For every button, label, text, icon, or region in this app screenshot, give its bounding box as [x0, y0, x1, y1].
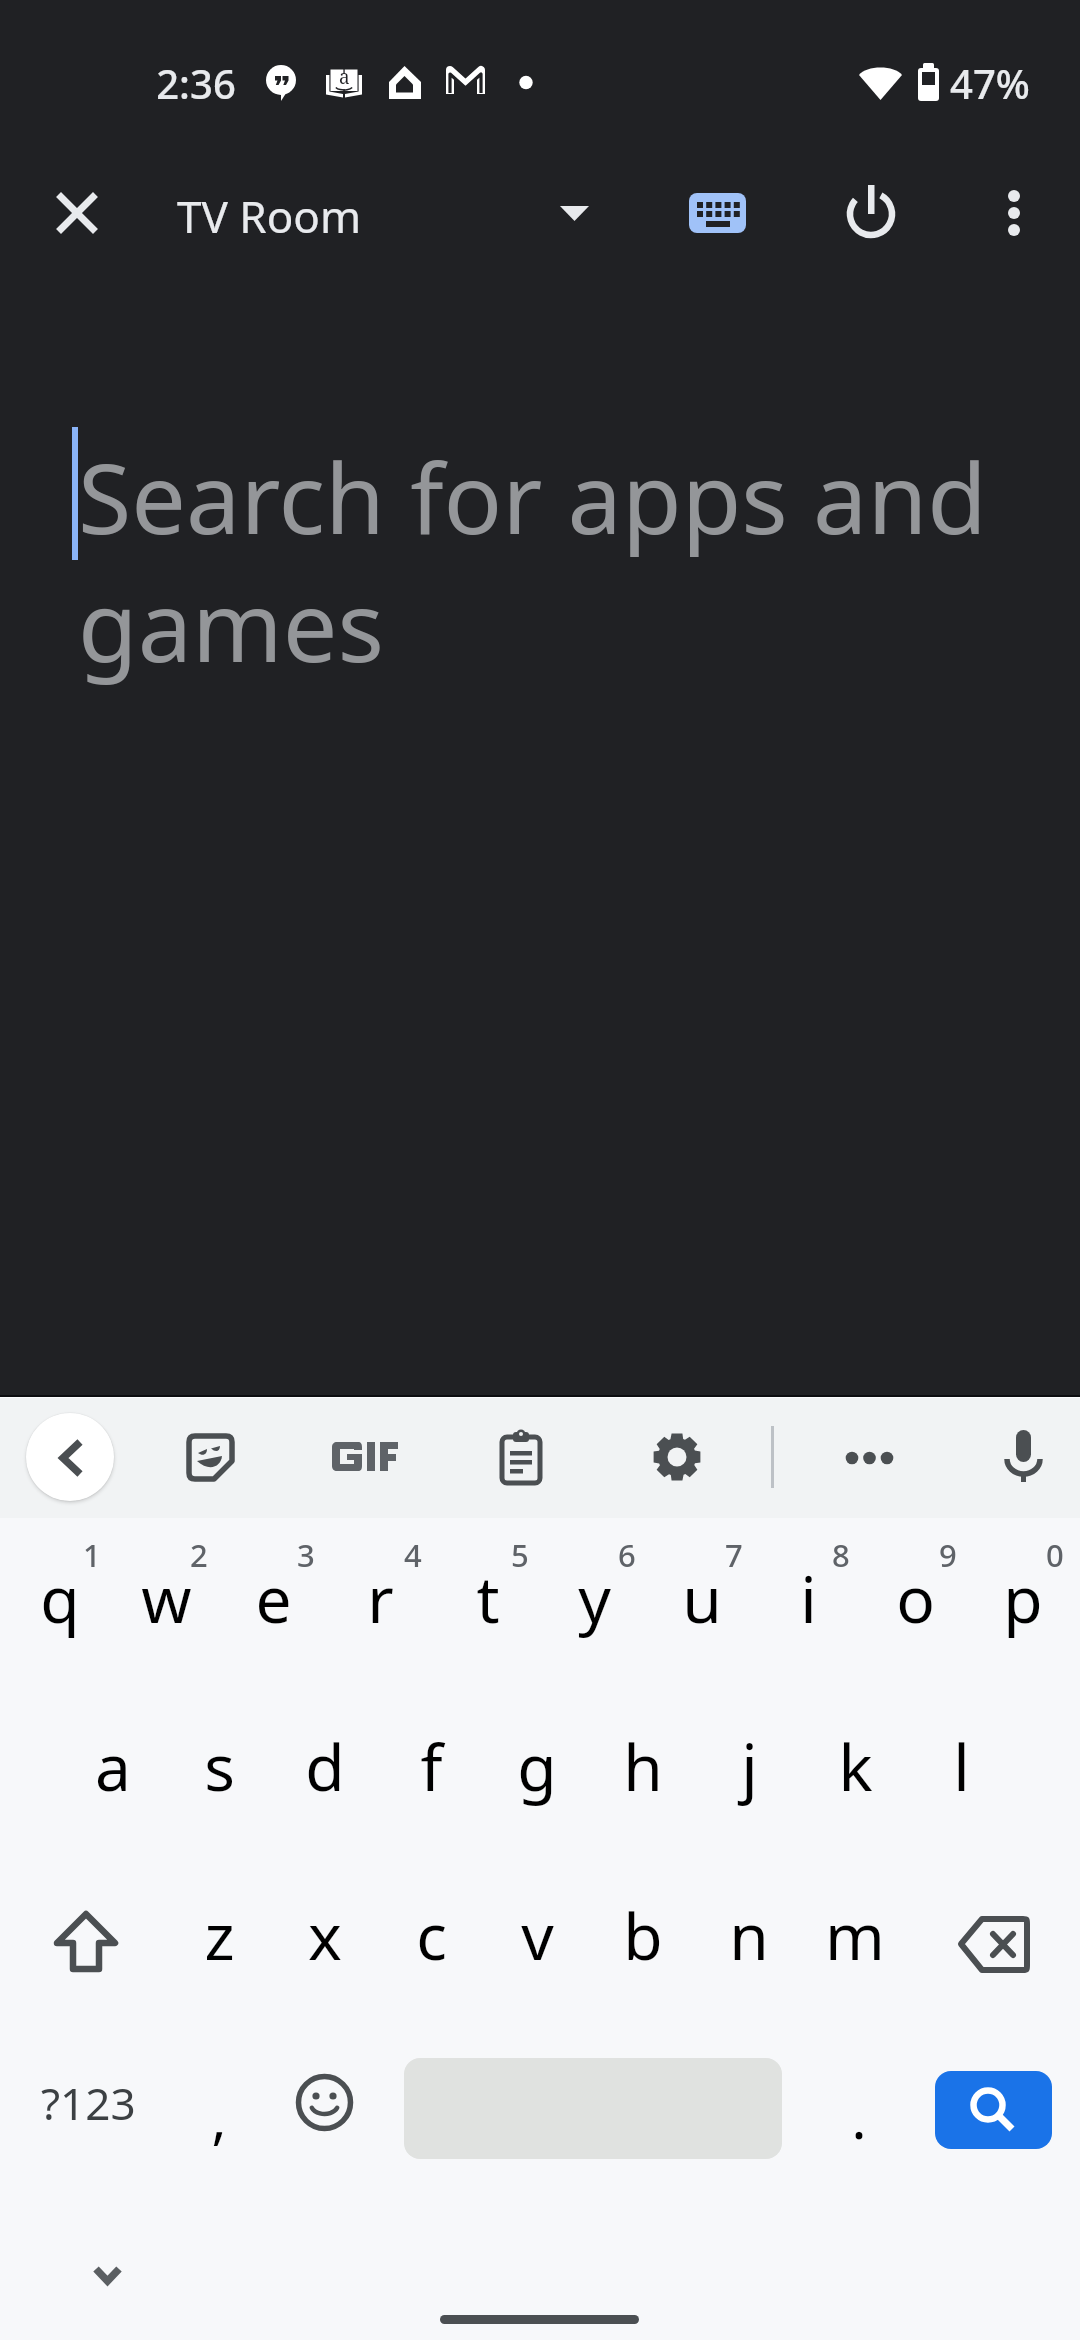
button[interactable]: d [272, 1690, 378, 1858]
staticText: 1 [83, 1534, 101, 1576]
staticText: y [578, 1555, 611, 1642]
button[interactable]: Voice input [979, 1413, 1067, 1501]
button[interactable]: TV Room [160, 165, 620, 261]
button[interactable]: Backspace [914, 1858, 1072, 2026]
staticText: 5 [511, 1534, 529, 1576]
staticText: p [1003, 1555, 1043, 1642]
staticText: 9 [939, 1534, 957, 1576]
button[interactable]: c [378, 1858, 484, 2026]
button[interactable]: Clipboard [477, 1413, 565, 1501]
button[interactable]: f [378, 1690, 484, 1858]
button[interactable]: More [826, 1413, 914, 1501]
staticText: z [204, 1892, 235, 1979]
button[interactable]: 1 [6, 1522, 113, 1690]
button[interactable]: Back [26, 1413, 114, 1501]
button[interactable]: Search [935, 2071, 1052, 2149]
button[interactable]: Toggle keyboard [669, 165, 765, 261]
button[interactable] [806, 2028, 912, 2196]
staticText: Search for apps and games [78, 430, 1008, 691]
staticText: 7 [725, 1534, 743, 1576]
button[interactable]: 5 [434, 1522, 541, 1690]
button[interactable]: Shift [8, 1858, 166, 2026]
staticText: w [141, 1555, 192, 1642]
button[interactable]: 7 [648, 1522, 755, 1690]
button[interactable]: b [590, 1858, 696, 2026]
button[interactable]: s [166, 1690, 272, 1858]
staticText: n [729, 1892, 769, 1979]
staticText: a [339, 64, 350, 90]
staticText: a [95, 1723, 131, 1810]
button[interactable]: ?123 [8, 2028, 166, 2196]
staticText: s [204, 1723, 235, 1810]
button[interactable]: 8 [755, 1522, 862, 1690]
button[interactable]: l [908, 1690, 1014, 1858]
staticText: f [420, 1723, 443, 1810]
staticText: l [953, 1723, 970, 1810]
staticText: u [682, 1555, 722, 1642]
button[interactable]: j [696, 1690, 802, 1858]
staticText: v [521, 1892, 554, 1979]
button[interactable]: Close [29, 165, 125, 261]
staticText: 2:36 [156, 56, 236, 110]
staticText: 8 [832, 1534, 850, 1576]
button[interactable]: 0 [969, 1522, 1076, 1690]
button[interactable]: k [802, 1690, 908, 1858]
staticText: o [896, 1555, 935, 1642]
button[interactable]: a [60, 1690, 166, 1858]
staticText: t [476, 1555, 500, 1642]
staticText: m [825, 1892, 885, 1979]
staticText: 2 [190, 1534, 208, 1576]
button[interactable]: Hide keyboard [59, 2228, 155, 2324]
button[interactable] [166, 2028, 272, 2196]
button[interactable]: n [696, 1858, 802, 2026]
button[interactable]: m [802, 1858, 908, 2026]
staticText: 0 [1046, 1534, 1064, 1576]
staticText: x [308, 1892, 342, 1979]
staticText: ?123 [41, 2073, 136, 2133]
staticText: r [367, 1555, 394, 1642]
button[interactable]: 4 [327, 1522, 434, 1690]
staticText: j [741, 1723, 758, 1810]
staticText: k [838, 1723, 873, 1810]
button[interactable]: Emoji [272, 2028, 378, 2196]
staticText: 4 [404, 1534, 422, 1576]
button[interactable]: z [166, 1858, 272, 2026]
button[interactable]: Stickers [166, 1413, 254, 1501]
staticText: e [255, 1555, 292, 1642]
staticText: . [851, 2079, 867, 2155]
button[interactable]: g [484, 1690, 590, 1858]
button[interactable]: 3 [220, 1522, 327, 1690]
button[interactable]: Search for apps and games [70, 430, 1030, 730]
staticText: i [800, 1555, 817, 1642]
staticText: b [623, 1892, 663, 1979]
staticText: 47% [950, 56, 1030, 110]
button[interactable]: x [272, 1858, 378, 2026]
staticText: TV Room [177, 186, 362, 246]
staticText: d [305, 1723, 345, 1810]
button[interactable]: More options [966, 165, 1062, 261]
button[interactable]: 6 [541, 1522, 648, 1690]
button[interactable]: 9 [862, 1522, 969, 1690]
staticText: g [517, 1723, 557, 1810]
staticText: 6 [618, 1534, 636, 1576]
button[interactable]: 2 [113, 1522, 220, 1690]
staticText: c [416, 1892, 447, 1979]
button[interactable]: Settings [633, 1413, 721, 1501]
staticText: 3 [297, 1534, 315, 1576]
button[interactable]: h [590, 1690, 696, 1858]
button[interactable]: Power [823, 165, 919, 261]
staticText: h [623, 1723, 663, 1810]
staticText: , [211, 2079, 227, 2155]
button[interactable]: GIF [320, 1413, 408, 1501]
staticText: q [40, 1555, 80, 1642]
button[interactable]: v [484, 1858, 590, 2026]
